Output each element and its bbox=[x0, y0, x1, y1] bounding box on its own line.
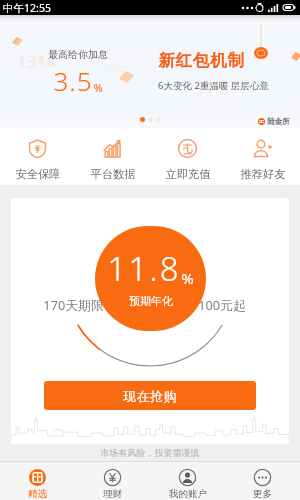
staticText: 1314 bbox=[196, 82, 229, 101]
staticText: 精选 bbox=[28, 488, 47, 500]
button[interactable]: 理财 bbox=[75, 462, 150, 500]
staticText: 1314 bbox=[104, 63, 125, 75]
staticText: 市场有风险，投资需谨慎 bbox=[0, 447, 300, 458]
staticText: 推荐好友 bbox=[240, 167, 286, 181]
staticText: 最高给你加息 bbox=[48, 48, 108, 61]
staticText: 安全保障 bbox=[15, 167, 61, 181]
staticText: 中午12:55 bbox=[3, 1, 51, 15]
staticText: 更多 bbox=[253, 488, 272, 500]
staticText: 170天期限 bbox=[43, 296, 104, 313]
staticText: 现在抢购 bbox=[123, 388, 177, 404]
button[interactable]: 安全保障 bbox=[0, 132, 75, 181]
button[interactable]: 更多 bbox=[225, 462, 300, 500]
staticText: 立即充值 bbox=[165, 167, 211, 181]
button[interactable]: 现在抢购 bbox=[44, 381, 256, 410]
staticText: 我的账户 bbox=[169, 488, 207, 500]
staticText: 新红包机制 bbox=[158, 50, 245, 71]
staticText: 平台数据 bbox=[90, 167, 136, 181]
staticText: 陆金所 bbox=[267, 117, 290, 126]
staticText: 11.8 bbox=[107, 246, 181, 291]
button[interactable]: 平台数据 bbox=[75, 132, 150, 181]
button[interactable]: 立即充值 bbox=[150, 132, 225, 181]
button[interactable]: 推荐好友 bbox=[225, 132, 300, 181]
staticText: 6大变化 2重温暖 层层心意 bbox=[158, 79, 269, 92]
staticText: 1314 bbox=[17, 50, 56, 73]
staticText: 预期年化 bbox=[129, 294, 173, 308]
staticText: 100元起 bbox=[198, 296, 246, 313]
staticText: % bbox=[181, 268, 194, 288]
button[interactable]: 我的账户 bbox=[150, 462, 225, 500]
staticText: % bbox=[93, 80, 103, 95]
staticText: 3.5 bbox=[53, 63, 93, 98]
button[interactable]: 精选 bbox=[0, 462, 75, 500]
staticText: 理财 bbox=[103, 488, 122, 500]
